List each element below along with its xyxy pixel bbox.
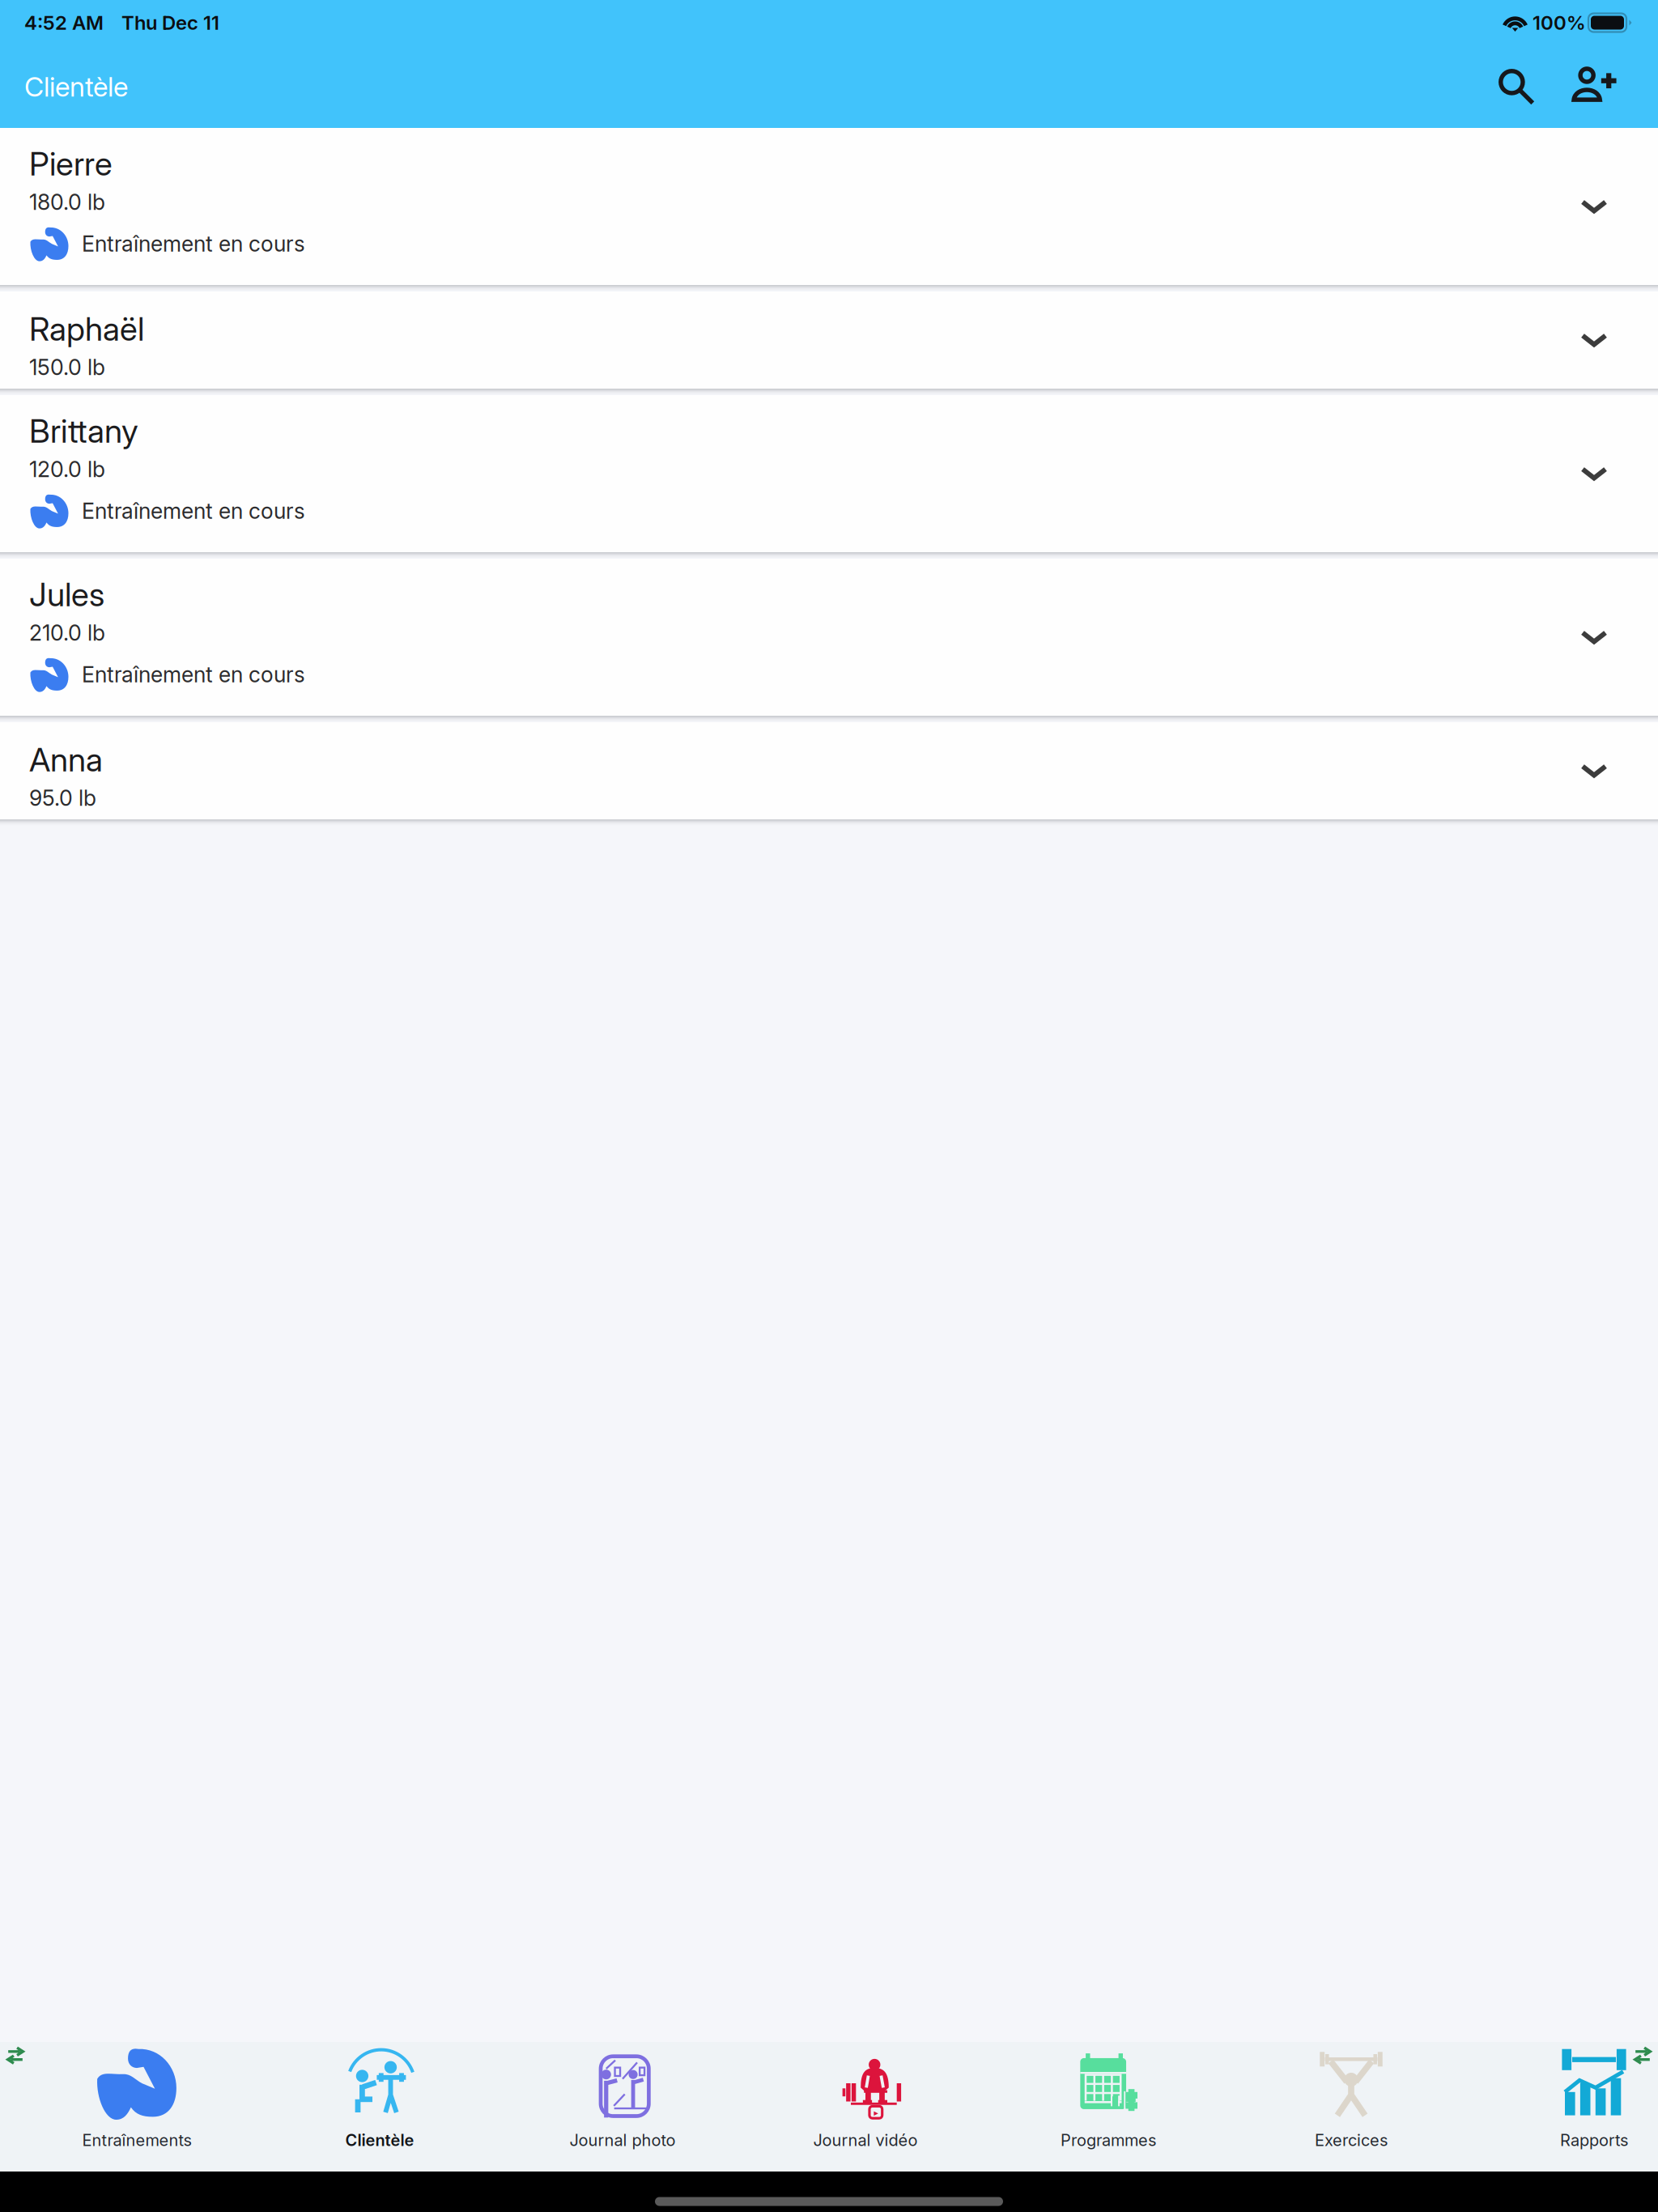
staticText: Programmes	[1061, 2130, 1156, 2150]
button[interactable]: Journal photo	[501, 2042, 744, 2172]
button[interactable]: Add client	[1555, 45, 1633, 128]
button[interactable]: Pierre	[0, 128, 1658, 285]
staticText: Rapports	[1560, 2130, 1628, 2150]
staticText: Journal photo	[570, 2130, 676, 2150]
staticText: 210.0 lb	[29, 620, 105, 646]
staticText: Clientèle	[24, 70, 128, 103]
button[interactable]: Rapports	[1473, 2042, 1658, 2172]
staticText: Raphaël	[29, 309, 144, 348]
button[interactable]: Exercices	[1230, 2042, 1473, 2172]
staticText: Entraînements	[82, 2130, 191, 2150]
button[interactable]: Entraînements	[15, 2042, 258, 2172]
button[interactable]: Anna	[0, 722, 1658, 819]
staticText: Entraînement en cours	[82, 661, 305, 688]
staticText: Exercices	[1315, 2130, 1388, 2150]
staticText: Entraînement en cours	[82, 498, 305, 524]
staticText: Thu Dec 11	[121, 11, 219, 34]
staticText: Entraînement en cours	[82, 231, 305, 257]
staticText: Clientèle	[345, 2130, 414, 2150]
button[interactable]: Brittany	[0, 395, 1658, 552]
staticText: Pierre	[29, 144, 113, 183]
staticText: 180.0 lb	[29, 189, 105, 215]
button[interactable]: Raphaël	[0, 291, 1658, 389]
staticText: Journal vidéo	[813, 2130, 918, 2150]
staticText: Jules	[29, 575, 104, 614]
staticText: 120.0 lb	[29, 456, 105, 482]
button[interactable]: Jules	[0, 559, 1658, 716]
staticText: 4:52 AM	[24, 11, 104, 34]
button[interactable]: Programmes	[987, 2042, 1230, 2172]
staticText: 95.0 lb	[29, 785, 96, 811]
staticText: Brittany	[29, 411, 138, 450]
staticText: Anna	[29, 740, 103, 779]
button[interactable]: Journal vidéo	[744, 2042, 987, 2172]
button[interactable]: Search	[1477, 45, 1555, 128]
staticText: 100%	[1533, 11, 1586, 34]
button[interactable]: Clientèle	[258, 2042, 501, 2172]
staticText: 150.0 lb	[29, 354, 105, 380]
